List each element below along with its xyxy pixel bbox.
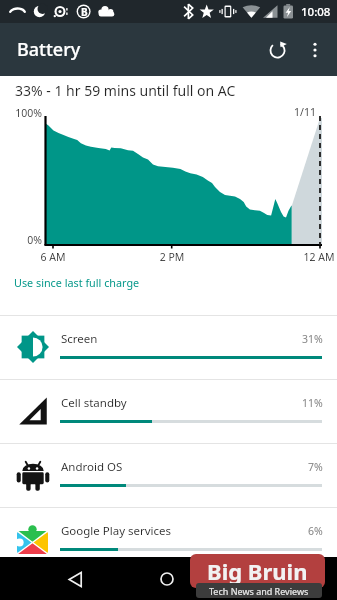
staticText: 0% bbox=[0, 233, 42, 247]
button[interactable]: Android OS bbox=[0, 444, 337, 507]
button[interactable]: More options bbox=[293, 28, 337, 72]
button[interactable]: Back bbox=[60, 564, 90, 594]
staticText: Google Play services bbox=[61, 523, 172, 539]
button[interactable]: Refresh bbox=[255, 28, 299, 72]
staticText: Tech News and Reviews bbox=[209, 585, 309, 597]
staticText: Use since last full charge bbox=[14, 275, 140, 290]
staticText: 31% bbox=[302, 332, 323, 346]
staticText: Android OS bbox=[61, 459, 123, 475]
staticText: B bbox=[81, 5, 88, 19]
button[interactable]: Screen bbox=[0, 316, 337, 379]
button[interactable]: Google Play services bbox=[0, 508, 337, 557]
staticText: Battery bbox=[17, 37, 81, 62]
staticText: 6 AM bbox=[23, 250, 83, 264]
staticText: 11% bbox=[302, 396, 323, 410]
staticText: 12 AM bbox=[289, 250, 337, 264]
staticText: Screen bbox=[61, 331, 98, 347]
staticText: 100% bbox=[0, 106, 42, 120]
button[interactable]: Cell standby bbox=[0, 380, 337, 443]
staticText: 10:08 bbox=[301, 4, 331, 20]
staticText: 1/11 bbox=[256, 105, 316, 119]
staticText: 7% bbox=[308, 460, 323, 474]
staticText: 2 PM bbox=[142, 250, 202, 264]
staticText: 6% bbox=[308, 524, 323, 538]
staticText: 33% - 1 hr 59 mins until full on AC bbox=[15, 81, 236, 100]
button[interactable]: Home bbox=[152, 564, 182, 594]
staticText: Cell standby bbox=[61, 395, 127, 411]
staticText: Big Bruin bbox=[207, 556, 308, 586]
button[interactable]: Recent apps bbox=[245, 564, 275, 594]
